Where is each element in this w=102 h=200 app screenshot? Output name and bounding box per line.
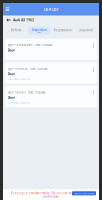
staticText: Type: Pre-Rental [7, 67, 27, 70]
button[interactable]: Menu [3, 3, 12, 15]
button[interactable]: Back [5, 17, 12, 23]
staticText: Registration [54, 28, 72, 32]
staticText: Door [7, 48, 14, 52]
button[interactable]: Type: Periodic [5, 86, 97, 107]
button[interactable]: Inspection [27, 26, 51, 35]
staticText: Date: 12-03-2025 [30, 67, 47, 70]
staticText: Inspection [32, 28, 47, 32]
staticText: Note about inspection [7, 101, 29, 104]
staticText: Running in emulator mode. Do not use wit… [10, 191, 91, 198]
staticText: Audi A3 1962 [13, 18, 34, 22]
staticText: CAR LIST [43, 7, 58, 12]
button[interactable]: Registration [51, 27, 74, 34]
staticText: Type: Post-Accident [7, 43, 32, 47]
button[interactable]: Defects [4, 27, 27, 34]
staticText: Insurance [79, 28, 93, 32]
staticText: Add to Home Screen [74, 192, 94, 195]
button[interactable]: Add to Home Screen [72, 191, 96, 195]
button[interactable]: Type: Post-Accident [5, 38, 97, 60]
staticText: Type: Periodic [7, 91, 25, 94]
staticText: Date: 11-03-2025 [28, 91, 45, 94]
staticText: Door [7, 72, 14, 76]
staticText: Door [7, 95, 14, 100]
staticText: Date: 13-03-2025 [35, 43, 52, 47]
button[interactable]: Type: Pre-Rental [5, 62, 97, 84]
staticText: Defects [11, 28, 21, 32]
staticText: — [7, 54, 9, 57]
staticText: Note about inspection [7, 77, 29, 80]
button[interactable]: Insurance [74, 27, 98, 34]
